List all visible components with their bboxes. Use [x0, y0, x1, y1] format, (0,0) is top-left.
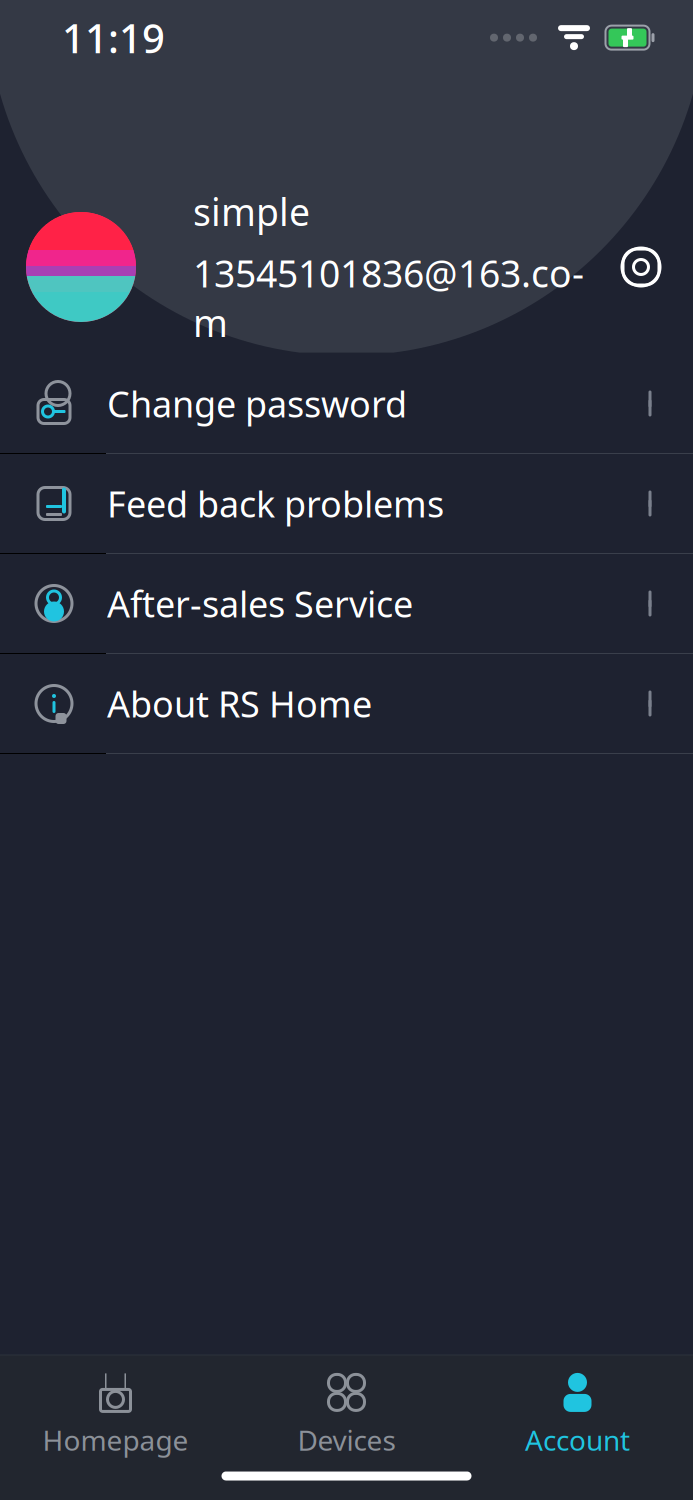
staticText: Account [525, 1421, 630, 1459]
button[interactable]: Change password [0, 354, 693, 454]
staticText: 13545101836@163.com [193, 248, 584, 347]
staticText: After-sales Service [107, 580, 413, 627]
staticText: About RS Home [107, 680, 372, 727]
staticText: Devices [297, 1421, 395, 1459]
staticText: Feed back problems [107, 480, 444, 527]
button[interactable]: About RS Home [0, 654, 693, 754]
button[interactable]: Account [462, 1367, 693, 1463]
button[interactable]: Settings [605, 231, 677, 303]
button[interactable]: Devices [231, 1367, 462, 1463]
staticText: Change password [107, 380, 407, 427]
button[interactable]: After-sales Service [0, 554, 693, 654]
button[interactable]: Homepage [0, 1367, 231, 1463]
button[interactable]: Feed back problems [0, 454, 693, 554]
staticText: 11:19 [62, 11, 165, 64]
staticText: Homepage [42, 1421, 188, 1459]
staticText: simple [193, 187, 310, 236]
